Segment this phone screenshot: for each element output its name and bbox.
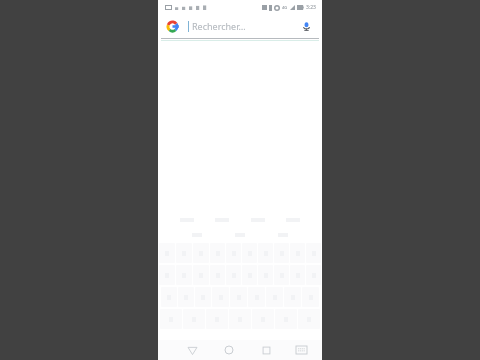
staticText: 4G bbox=[282, 5, 288, 10]
button[interactable]: Google bbox=[158, 14, 322, 38]
button[interactable]: Applications récentes bbox=[254, 340, 278, 360]
staticText: Rechercher… bbox=[192, 20, 298, 32]
button[interactable]: Recherche vocale bbox=[298, 18, 314, 34]
button[interactable]: Changer de clavier bbox=[289, 340, 313, 360]
button[interactable]: Google bbox=[166, 20, 179, 33]
button[interactable]: Accueil bbox=[217, 340, 241, 360]
button[interactable]: Retour bbox=[180, 340, 204, 360]
staticText: 3:23 bbox=[306, 4, 316, 11]
